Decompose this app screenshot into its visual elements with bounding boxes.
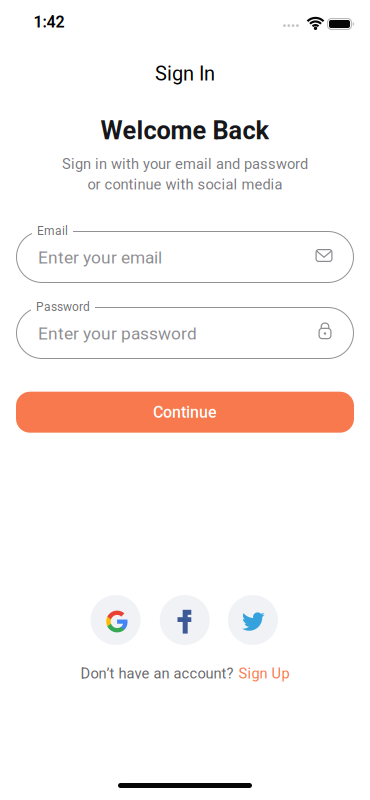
button[interactable]: Continue (16, 392, 354, 433)
staticText: Password (36, 300, 90, 314)
button[interactable]: Sign Up (238, 665, 289, 682)
button[interactable]: Password (16, 307, 354, 359)
staticText: Sign Up (238, 665, 289, 682)
button[interactable]: Sign in with Twitter (228, 595, 278, 645)
staticText: or continue with social media (87, 176, 282, 193)
staticText: 1:42 (33, 13, 64, 31)
staticText: Enter your password (38, 324, 197, 343)
button[interactable]: Sign in with Facebook (160, 595, 210, 645)
staticText: Sign In (155, 62, 215, 85)
staticText: Sign in with your email and password (62, 156, 308, 172)
button[interactable]: Email (16, 231, 354, 283)
staticText: Welcome Back (100, 116, 269, 145)
staticText: Don’t have an account? (80, 665, 233, 682)
button[interactable]: Sign in with Google (91, 595, 141, 645)
staticText: Email (37, 224, 68, 238)
staticText: Enter your email (38, 248, 162, 267)
staticText: Continue (153, 403, 217, 421)
